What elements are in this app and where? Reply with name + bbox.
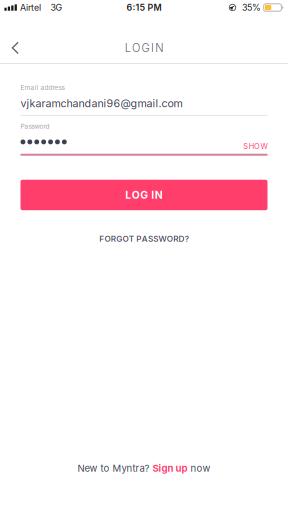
staticText: Sign up bbox=[152, 462, 187, 474]
staticText: 3G bbox=[50, 2, 62, 13]
staticText: SHOW bbox=[243, 142, 267, 151]
staticText: vjkaramchandani96@gmail.com bbox=[20, 97, 182, 110]
staticText: New to Myntra? bbox=[77, 462, 152, 474]
staticText: Password bbox=[20, 122, 49, 130]
staticText: LOGIN bbox=[125, 41, 163, 55]
button[interactable]: Sign up bbox=[152, 462, 187, 474]
staticText: Airtel bbox=[20, 2, 41, 13]
staticText: 6:15 PM bbox=[126, 2, 161, 13]
staticText: LOG IN bbox=[125, 189, 163, 201]
button[interactable]: SHOW bbox=[243, 133, 267, 151]
button[interactable]: LOG IN bbox=[20, 180, 267, 210]
staticText: now bbox=[187, 462, 210, 474]
button[interactable]: FORGOT PASSWORD? bbox=[89, 228, 199, 250]
staticText: 35% bbox=[242, 2, 261, 13]
button[interactable]: Back bbox=[0, 35, 31, 61]
staticText: Email address bbox=[20, 83, 64, 91]
staticText: FORGOT PASSWORD? bbox=[99, 234, 189, 244]
